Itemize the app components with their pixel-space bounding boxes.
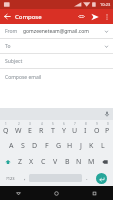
button[interactable]: Attach file [75, 10, 88, 23]
button[interactable]: Subject [0, 54, 113, 68]
button[interactable]: 7 [69, 120, 80, 138]
staticText: U [72, 126, 78, 136]
staticText: 6 [63, 122, 65, 126]
button[interactable]: M [85, 154, 97, 170]
button[interactable]: 9 [91, 120, 102, 138]
button[interactable]: Enter [96, 173, 107, 184]
button[interactable]: To [0, 39, 113, 53]
button[interactable]: From [0, 24, 113, 38]
staticText: 3 [29, 122, 31, 126]
button[interactable]: Shift [0, 154, 15, 170]
staticText: 1 [5, 122, 7, 126]
button[interactable]: Back [0, 9, 15, 24]
staticText: N [76, 157, 82, 167]
button[interactable]: 1 [0, 120, 12, 138]
staticText: 9 [96, 122, 98, 126]
button[interactable]: Home [37, 186, 75, 200]
staticText: R [39, 126, 44, 136]
staticText: To [5, 43, 104, 50]
button[interactable]: , [20, 170, 29, 186]
staticText: ?123 [6, 176, 15, 181]
button[interactable]: H [64, 138, 75, 154]
staticText: T [51, 126, 55, 136]
button[interactable]: More options [101, 11, 113, 23]
staticText: 0 [107, 122, 109, 126]
staticText: S [21, 141, 25, 151]
staticText: Subject [5, 58, 23, 65]
button[interactable]: 4 [36, 120, 47, 138]
staticText: A [9, 141, 14, 151]
staticText: , [24, 174, 26, 182]
button[interactable]: J [75, 138, 86, 154]
staticText: E [28, 126, 32, 136]
staticText: O [94, 126, 100, 136]
button[interactable]: N [73, 154, 85, 170]
staticText: M [88, 157, 95, 167]
staticText: Q [3, 126, 9, 136]
button[interactable]: V [49, 154, 61, 170]
staticText: 5 [52, 122, 54, 126]
staticText: J [80, 141, 82, 151]
button[interactable]: L [97, 138, 108, 154]
staticText: C [41, 157, 46, 167]
button[interactable]: X [26, 154, 37, 170]
button[interactable]: Recents [75, 186, 113, 200]
staticText: H [67, 141, 73, 151]
button[interactable]: Send [88, 10, 101, 23]
button[interactable]: F [41, 138, 53, 154]
staticText: Z [18, 157, 23, 167]
button[interactable]: 8 [80, 120, 91, 138]
staticText: Y [62, 126, 66, 136]
staticText: B [65, 157, 70, 167]
staticText: L [101, 141, 105, 151]
staticText: X [29, 157, 34, 167]
staticText: 7 [74, 122, 76, 126]
staticText: F [45, 141, 49, 151]
button[interactable]: Compose email [0, 69, 113, 108]
staticText: P [105, 126, 110, 136]
staticText: Compose [15, 13, 75, 21]
button[interactable]: ?123 [1, 170, 20, 186]
staticText: 2 [18, 122, 20, 126]
button[interactable]: Z [15, 154, 26, 170]
staticText: G [56, 141, 62, 151]
button[interactable]: B [61, 154, 73, 170]
button[interactable]: 5 [47, 120, 58, 138]
staticText: 10:23 [100, 2, 111, 7]
button[interactable]: 3 [24, 120, 36, 138]
button[interactable]: S [17, 138, 29, 154]
staticText: W [15, 126, 22, 136]
button[interactable]: 2 [12, 120, 24, 138]
button[interactable]: Back [0, 186, 37, 200]
button[interactable]: A [5, 138, 17, 154]
staticText: D [32, 141, 38, 151]
button[interactable]: G [53, 138, 64, 154]
button[interactable]: K [86, 138, 97, 154]
staticText: K [89, 141, 94, 151]
button[interactable]: Voice input [101, 108, 113, 120]
button[interactable]: 6 [58, 120, 69, 138]
staticText: V [53, 157, 58, 167]
staticText: 4 [41, 122, 43, 126]
button[interactable]: D [29, 138, 41, 154]
button[interactable]: 0 [102, 120, 113, 138]
staticText: From [5, 28, 18, 35]
button[interactable]: C [37, 154, 49, 170]
staticText: I [84, 126, 87, 136]
button[interactable]: . [82, 170, 91, 186]
staticText: . [86, 174, 88, 182]
staticText: 8 [85, 122, 87, 126]
staticText: Compose email [5, 74, 42, 81]
staticText: gomzeeneteam@gmail.com [23, 28, 104, 35]
button[interactable]: Backspace [97, 154, 113, 170]
